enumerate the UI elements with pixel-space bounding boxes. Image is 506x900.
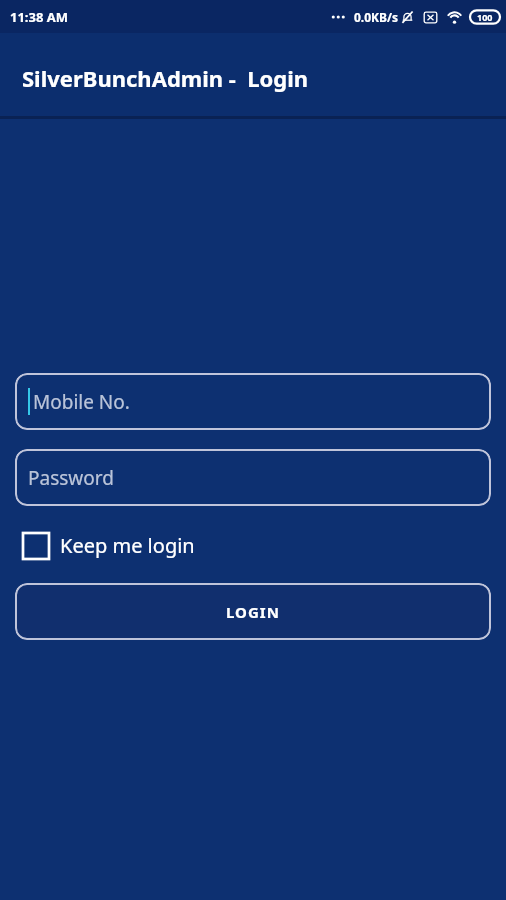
button[interactable]: Password — [15, 449, 491, 506]
staticText: Keep me login — [60, 532, 195, 559]
staticText: 100 — [477, 11, 493, 23]
staticText: Password — [28, 465, 114, 491]
button[interactable]: Keep me login — [20, 528, 205, 563]
button[interactable]: Mobile No. — [15, 373, 491, 430]
staticText: LOGIN — [226, 602, 280, 622]
staticText: Mobile No. — [33, 389, 130, 415]
staticText: SilverBunchAdmin - Login — [22, 63, 309, 93]
button[interactable]: LOGIN — [15, 583, 491, 640]
staticText: 0.0KB/s — [354, 9, 399, 25]
staticText: 11:38 AM — [10, 8, 69, 26]
